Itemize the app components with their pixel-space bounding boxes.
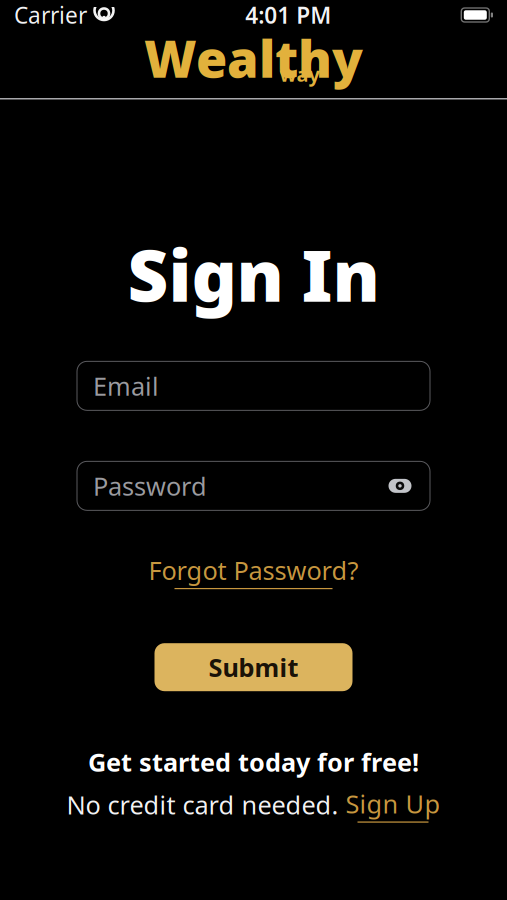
button[interactable]: Forgot Password? [142, 549, 364, 593]
button[interactable]: Sign Up [345, 787, 440, 823]
staticText: Sign In [127, 227, 379, 321]
staticText: way [279, 61, 319, 87]
staticText: Forgot Password? [148, 553, 358, 587]
staticText: Sign Up [345, 787, 440, 820]
button[interactable]: Submit [154, 643, 352, 691]
staticText: No credit card needed. [66, 788, 338, 821]
staticText: Submit [208, 650, 298, 684]
staticText: Email [93, 369, 159, 403]
staticText: 4:01 PM [245, 0, 331, 30]
button[interactable]: Password [77, 461, 430, 510]
staticText: Get started today for free! [88, 745, 419, 779]
staticText: Password [93, 469, 207, 503]
staticText: Carrier [14, 0, 87, 30]
button[interactable]: Email [77, 361, 430, 410]
button[interactable]: Show password [380, 466, 420, 506]
staticText: Wealthy [144, 24, 363, 92]
